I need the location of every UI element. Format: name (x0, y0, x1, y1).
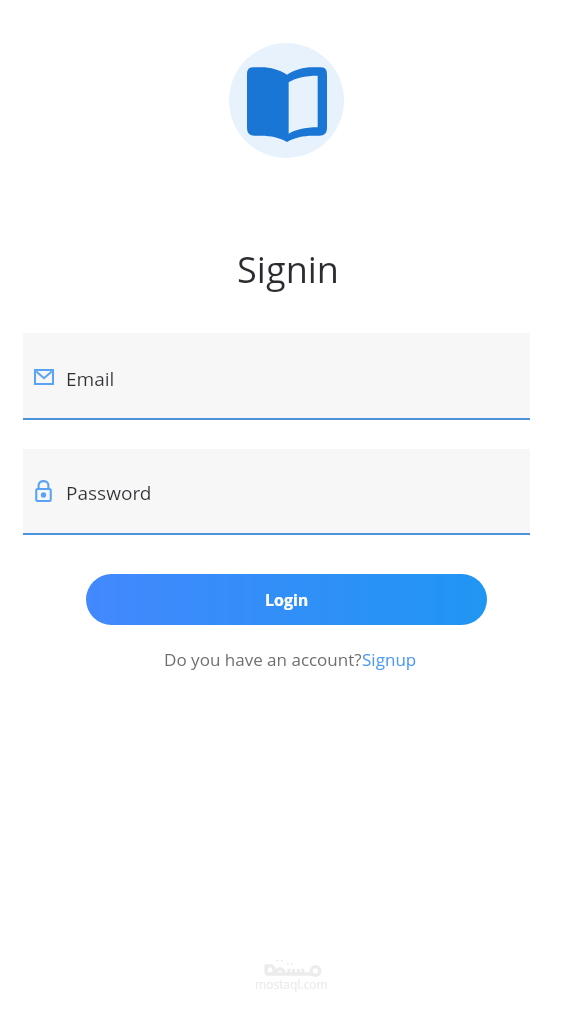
staticText: Do you have an account? (164, 648, 362, 671)
staticText: Signin (237, 245, 339, 294)
staticText: Email (66, 366, 115, 392)
staticText: Signup (362, 648, 417, 671)
staticText: Login (265, 589, 309, 611)
button[interactable]: Signup (362, 648, 417, 671)
staticText: Password (66, 480, 152, 506)
other: Password (34, 480, 53, 502)
button[interactable]: Password (23, 449, 530, 535)
other: Email (34, 369, 54, 385)
staticText: mostaql.com (255, 976, 328, 992)
button[interactable]: Login (86, 574, 487, 625)
button[interactable]: Email (23, 333, 530, 420)
